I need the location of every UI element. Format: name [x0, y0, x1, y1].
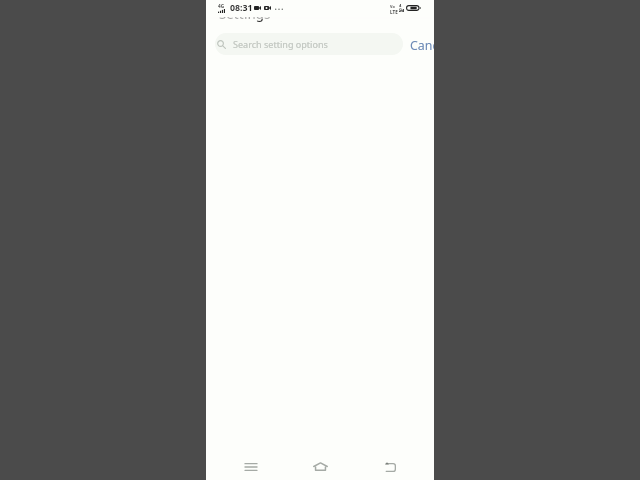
staticText: Search setting options — [233, 38, 328, 50]
staticText: Settings — [219, 5, 271, 23]
staticText: 4G — [399, 3, 404, 11]
button[interactable]: Recent apps — [231, 447, 271, 480]
staticText: Cancel — [410, 37, 434, 54]
staticText: LTE — [390, 9, 398, 15]
staticText: 4G — [218, 3, 225, 9]
button[interactable]: Cancel — [410, 37, 434, 54]
staticText: 08:31 — [230, 2, 253, 14]
button[interactable]: Back — [370, 447, 410, 480]
staticText: Vo — [390, 4, 395, 9]
button[interactable]: Home — [300, 446, 340, 480]
button[interactable]: Search setting options — [215, 33, 403, 55]
